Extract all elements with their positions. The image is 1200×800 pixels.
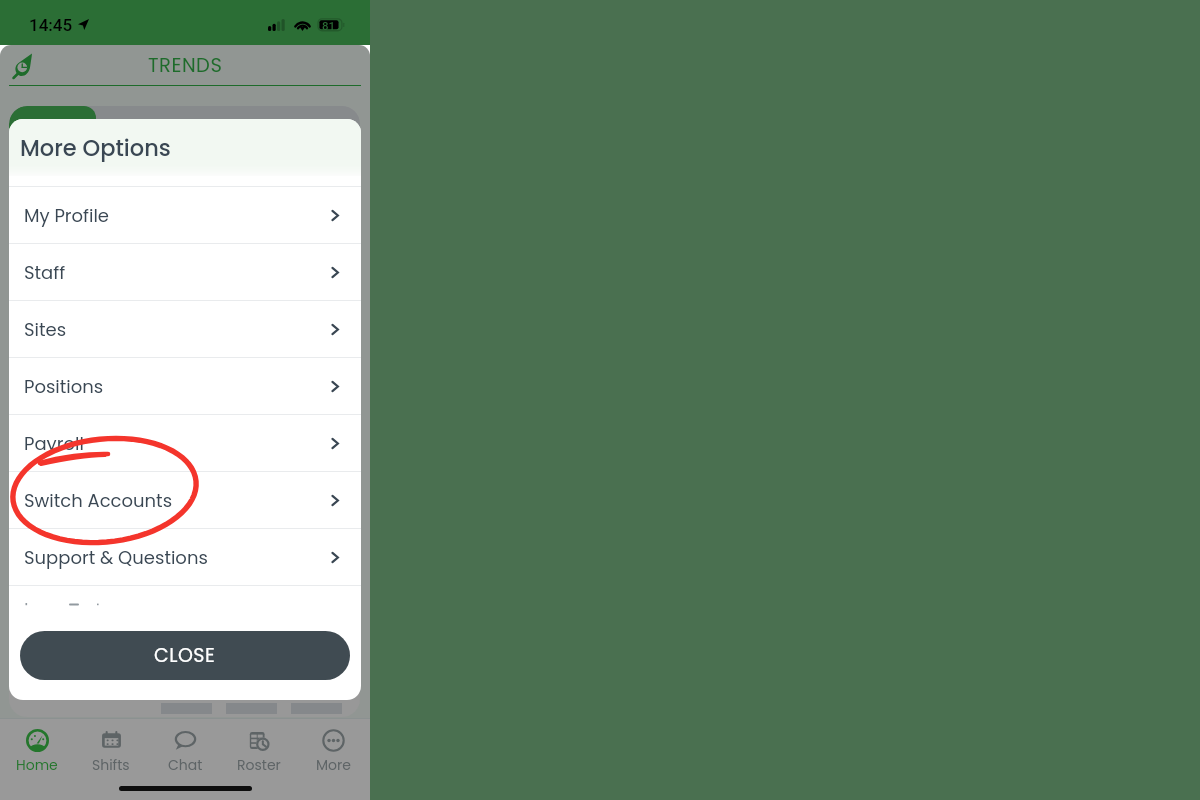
button[interactable]: CLOSE: [20, 631, 350, 680]
button[interactable]: Sites: [9, 301, 361, 357]
button[interactable]: Chat: [148, 729, 222, 774]
staticText: Shifts: [92, 755, 130, 774]
staticText: CLOSE: [154, 642, 216, 669]
button[interactable]: Roster: [222, 729, 296, 774]
staticText: More: [316, 755, 351, 774]
staticText: TRENDS: [148, 52, 223, 79]
staticText: My Profile: [24, 203, 110, 228]
staticText: 14:45: [29, 15, 73, 35]
staticText: Home: [16, 755, 58, 774]
button[interactable]: Support & Questions: [9, 529, 361, 585]
staticText: Chat: [168, 755, 203, 774]
button[interactable]: [9, 586, 361, 642]
staticText: 81: [322, 19, 336, 32]
staticText: Sites: [24, 317, 67, 342]
staticText: Payroll: [24, 431, 84, 456]
staticText: More Options: [20, 132, 171, 163]
button[interactable]: Home: [0, 729, 74, 774]
staticText: Switch Accounts: [24, 488, 173, 513]
button[interactable]: More: [296, 729, 370, 774]
button[interactable]: Staff: [9, 244, 361, 300]
staticText: Support & Questions: [24, 545, 208, 570]
button[interactable]: My Profile: [9, 187, 361, 243]
staticText: Roster: [237, 755, 281, 774]
staticText: Positions: [24, 374, 104, 399]
button[interactable]: Shifts: [74, 729, 148, 774]
button[interactable]: Payroll: [9, 415, 361, 471]
staticText: Staff: [24, 260, 66, 285]
button[interactable]: Switch Accounts: [9, 472, 361, 528]
button[interactable]: Positions: [9, 358, 361, 414]
